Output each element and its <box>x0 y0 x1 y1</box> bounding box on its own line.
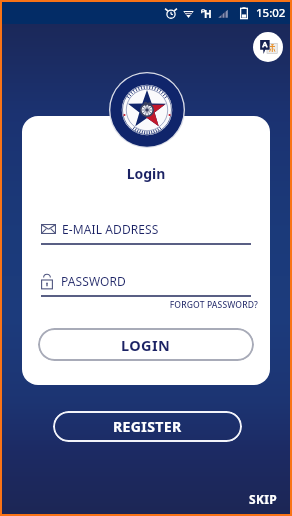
button[interactable]: Translate <box>253 32 283 62</box>
button[interactable]: FORGOT PASSWORD? <box>169 299 258 311</box>
staticText: E-MAIL ADDRESS <box>62 221 159 237</box>
staticText: REGISTER <box>113 417 182 436</box>
button[interactable]: REGISTER <box>53 411 242 442</box>
button[interactable]: SKIP <box>249 491 277 507</box>
staticText: SKIP <box>249 491 277 507</box>
staticText: 15:02 <box>256 5 286 21</box>
button[interactable]: LOGIN <box>38 328 254 361</box>
staticText: LOGIN <box>121 335 171 355</box>
staticText: PASSWORD <box>61 273 126 289</box>
staticText: H <box>204 7 212 19</box>
staticText: Login <box>22 164 270 183</box>
